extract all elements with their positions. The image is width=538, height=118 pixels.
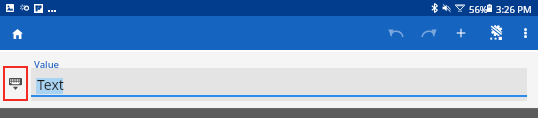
button[interactable]: Redo	[415, 16, 443, 50]
button[interactable]: Text	[31, 68, 527, 101]
button[interactable]: Undo	[381, 16, 409, 50]
button[interactable]: Hide keyboard	[3, 66, 28, 101]
staticText: 56%	[469, 3, 488, 16]
button[interactable]: Layout bounds	[483, 16, 511, 50]
staticText: Value	[34, 58, 60, 71]
staticText: Text	[37, 75, 64, 91]
button[interactable]: Add	[447, 16, 475, 50]
button[interactable]: Home	[4, 16, 28, 50]
staticText: 3:26 PM	[496, 3, 532, 16]
button[interactable]: More options	[511, 16, 538, 50]
